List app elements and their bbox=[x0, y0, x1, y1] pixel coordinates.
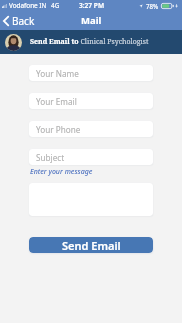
button[interactable]: Your Phone bbox=[29, 121, 153, 137]
staticText: 4G bbox=[51, 1, 60, 10]
button[interactable]: Send Email to Clinical Psychologist bbox=[0, 30, 182, 54]
staticText: Mail bbox=[81, 14, 102, 27]
other: Back bbox=[3, 16, 9, 26]
staticText: Send Email to Clinical Psychologist bbox=[30, 37, 149, 47]
staticText: Your Name bbox=[36, 68, 79, 79]
button[interactable]: Send Email bbox=[29, 237, 153, 253]
button[interactable]: Back bbox=[3, 12, 35, 30]
staticText: Your Phone bbox=[36, 124, 81, 135]
button[interactable]: Your Name bbox=[29, 65, 153, 81]
staticText: Back bbox=[12, 14, 35, 28]
staticText: Vodafone IN bbox=[9, 1, 47, 10]
staticText: Enter your message bbox=[30, 167, 93, 177]
staticText: Subject bbox=[36, 152, 65, 163]
staticText: Your Email bbox=[36, 96, 77, 107]
staticText: 3:27 PM bbox=[79, 1, 105, 10]
staticText: 78% bbox=[146, 2, 159, 10]
button[interactable]: Subject bbox=[29, 149, 153, 165]
button[interactable]: Your Email bbox=[29, 93, 153, 109]
staticText: Send Email bbox=[62, 238, 121, 253]
